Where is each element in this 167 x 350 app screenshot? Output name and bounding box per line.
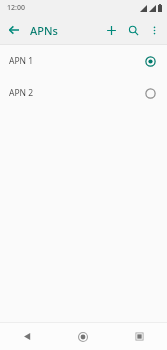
button[interactable]: APN 2	[0, 77, 167, 109]
button[interactable]: APN 1	[0, 45, 167, 77]
staticText: 12:00	[7, 3, 25, 13]
button[interactable]: Search	[122, 19, 144, 41]
button[interactable]: Recent apps	[111, 323, 167, 350]
button[interactable]: Add APN	[100, 19, 122, 41]
button[interactable]: More options	[144, 20, 164, 40]
button[interactable]: Back	[3, 19, 25, 41]
staticText: APNs	[30, 23, 58, 38]
staticText: APN 2	[9, 87, 34, 99]
button[interactable]: Back	[0, 323, 55, 350]
staticText: APN 1	[9, 55, 34, 67]
button[interactable]: Home	[55, 323, 111, 350]
